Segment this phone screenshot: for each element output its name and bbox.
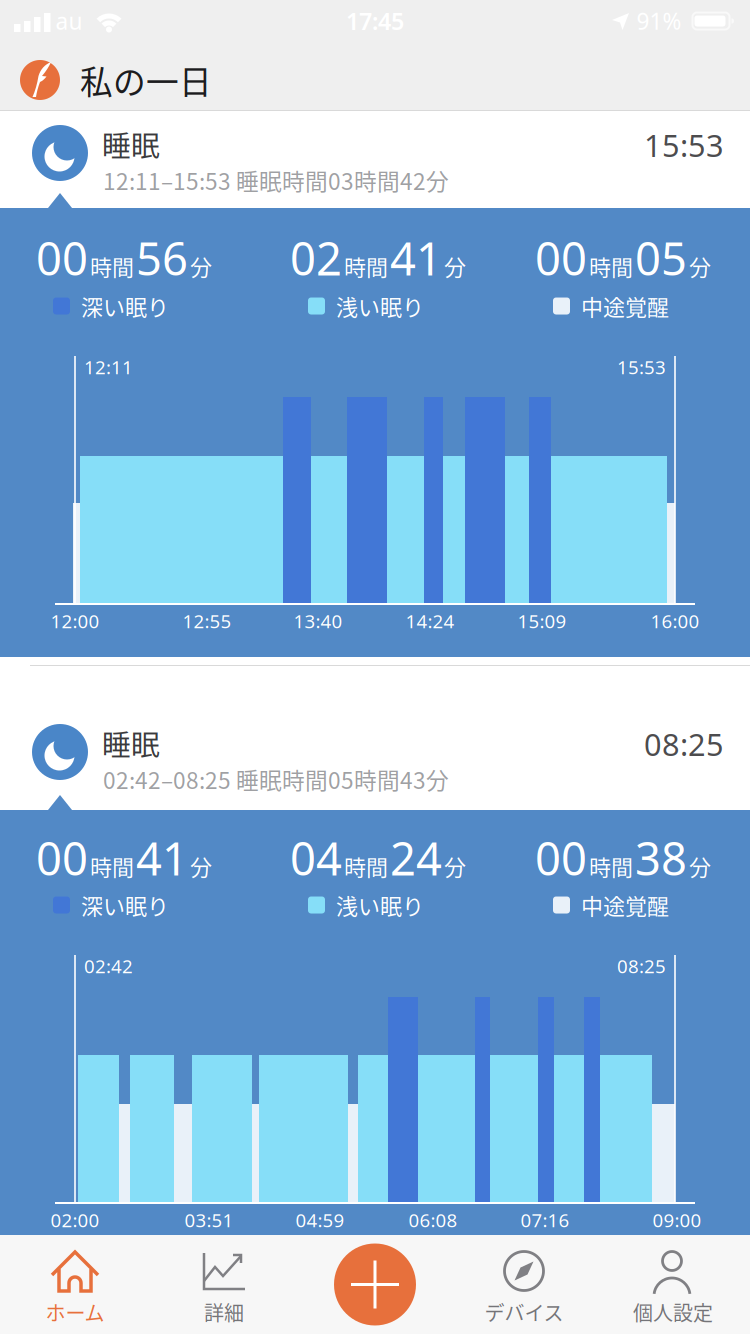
- staticText: 分: [689, 250, 711, 282]
- staticText: 睡眠: [102, 722, 160, 764]
- staticText: 詳細: [204, 1297, 244, 1326]
- button[interactable]: 詳細: [149, 1235, 299, 1334]
- staticText: 時間: [589, 850, 633, 882]
- staticText: 時間: [589, 250, 633, 282]
- staticText: 時間: [344, 250, 388, 282]
- staticText: デバイス: [484, 1297, 563, 1326]
- staticText: 14:24: [405, 608, 454, 634]
- button[interactable]: ホーム: [0, 1235, 150, 1334]
- staticText: 浅い眠り: [336, 889, 424, 921]
- staticText: 中途覚醒: [581, 889, 669, 921]
- staticText: 15:53: [617, 354, 666, 380]
- staticText: 12:11: [84, 354, 133, 380]
- staticText: 中途覚醒: [581, 290, 669, 322]
- staticText: 09:00: [652, 1207, 701, 1233]
- staticText: 08:25: [617, 953, 666, 979]
- staticText: 私の一日: [80, 56, 212, 104]
- button[interactable]: 個人設定: [598, 1235, 748, 1334]
- staticText: 04: [290, 827, 342, 889]
- staticText: 02:00: [50, 1207, 99, 1233]
- staticText: 分: [190, 850, 212, 882]
- staticText: 38: [635, 827, 687, 889]
- staticText: 浅い眠り: [336, 290, 424, 322]
- button[interactable]: 睡眠: [0, 666, 750, 810]
- staticText: 00: [535, 827, 587, 889]
- staticText: 15:53: [644, 124, 724, 166]
- staticText: 41: [136, 827, 188, 889]
- button[interactable]: 記録を追加: [300, 1235, 450, 1334]
- staticText: 深い眠り: [81, 290, 169, 322]
- staticText: 分: [689, 850, 711, 882]
- staticText: 分: [190, 250, 212, 282]
- staticText: 00: [535, 227, 587, 289]
- staticText: 15:09: [517, 608, 566, 634]
- staticText: 分: [444, 850, 466, 882]
- staticText: au: [55, 6, 82, 36]
- button[interactable]: 睡眠: [0, 111, 750, 208]
- staticText: 深い眠り: [81, 889, 169, 921]
- staticText: 12:55: [182, 608, 231, 634]
- staticText: 時間: [90, 850, 134, 882]
- staticText: 分: [444, 250, 466, 282]
- staticText: 00: [36, 227, 88, 289]
- staticText: 05: [635, 227, 687, 289]
- staticText: 06:08: [408, 1207, 457, 1233]
- staticText: 41: [390, 227, 442, 289]
- staticText: 時間: [344, 850, 388, 882]
- staticText: 12:00: [50, 608, 99, 634]
- staticText: 13:40: [293, 608, 342, 634]
- button[interactable]: デバイス: [449, 1235, 599, 1334]
- staticText: 04:59: [295, 1207, 344, 1233]
- staticText: 個人設定: [633, 1297, 713, 1326]
- staticText: 時間: [90, 250, 134, 282]
- staticText: 02: [290, 227, 342, 289]
- staticText: 睡眠: [102, 123, 160, 165]
- staticText: 00: [36, 827, 88, 889]
- staticText: 16:00: [650, 608, 699, 634]
- staticText: 02:42–08:25 睡眠時間05時間43分: [103, 763, 449, 795]
- staticText: 07:16: [520, 1207, 569, 1233]
- staticText: 12:11–15:53 睡眠時間03時間42分: [103, 164, 449, 196]
- staticText: ホーム: [45, 1297, 104, 1326]
- staticText: 17:45: [346, 5, 404, 37]
- staticText: 02:42: [84, 953, 133, 979]
- staticText: 03:51: [184, 1207, 233, 1233]
- staticText: 08:25: [644, 723, 724, 765]
- staticText: 24: [390, 827, 442, 889]
- staticText: 56: [136, 227, 188, 289]
- staticText: 91%: [636, 6, 681, 36]
